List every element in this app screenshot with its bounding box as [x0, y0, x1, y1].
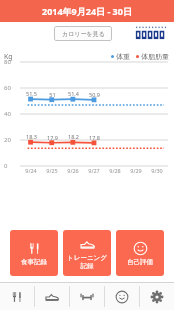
staticText: 20 — [4, 136, 11, 144]
staticText: 51.4 — [68, 90, 79, 97]
staticText: 40 — [4, 110, 11, 118]
button[interactable]: 食事記録 — [10, 230, 58, 276]
staticText: 9/24 — [25, 167, 37, 174]
button[interactable]: トレーニング 記録 — [63, 230, 111, 276]
staticText: 18.3 — [26, 133, 37, 140]
staticText: 9/30 — [151, 167, 163, 174]
staticText: 9/25 — [46, 167, 58, 174]
staticText: トレーニング 記録 — [67, 254, 107, 270]
button[interactable]: 自己評価 — [116, 230, 164, 276]
button[interactable]: Training — [70, 283, 104, 310]
staticText: 50.9 — [89, 91, 100, 98]
button[interactable]: Walking — [35, 283, 69, 310]
button[interactable]: 2014年9月24日 - 30日 — [0, 0, 174, 22]
staticText: 体脂肪量 — [141, 52, 169, 61]
staticText: 9/29 — [130, 167, 142, 174]
staticText: カロリーを見る — [62, 30, 105, 38]
staticText: 自己評価 — [127, 258, 153, 266]
staticText: 9/27 — [88, 167, 100, 174]
other: OASIS — [134, 25, 168, 41]
button[interactable]: カロリーを見る — [54, 26, 112, 41]
staticText: 食事記録 — [21, 258, 47, 266]
staticText: Kg — [4, 52, 13, 62]
button[interactable]: Settings — [140, 283, 174, 310]
staticText: 17.8 — [89, 134, 100, 141]
staticText: 51 — [49, 91, 56, 98]
staticText: 9/26 — [67, 167, 79, 174]
staticText: 80 — [4, 58, 11, 66]
staticText: 18.2 — [68, 133, 79, 140]
staticText: 9/28 — [109, 167, 121, 174]
staticText: 60 — [4, 84, 11, 92]
staticText: 51.5 — [26, 90, 37, 97]
button[interactable]: Meals — [0, 283, 34, 310]
staticText: 0 — [4, 162, 8, 170]
staticText: 17.9 — [47, 134, 58, 141]
button[interactable]: Self rating — [105, 283, 139, 310]
staticText: 体重 — [116, 52, 130, 61]
staticText: 2014年9月24日 - 30日 — [42, 5, 132, 17]
